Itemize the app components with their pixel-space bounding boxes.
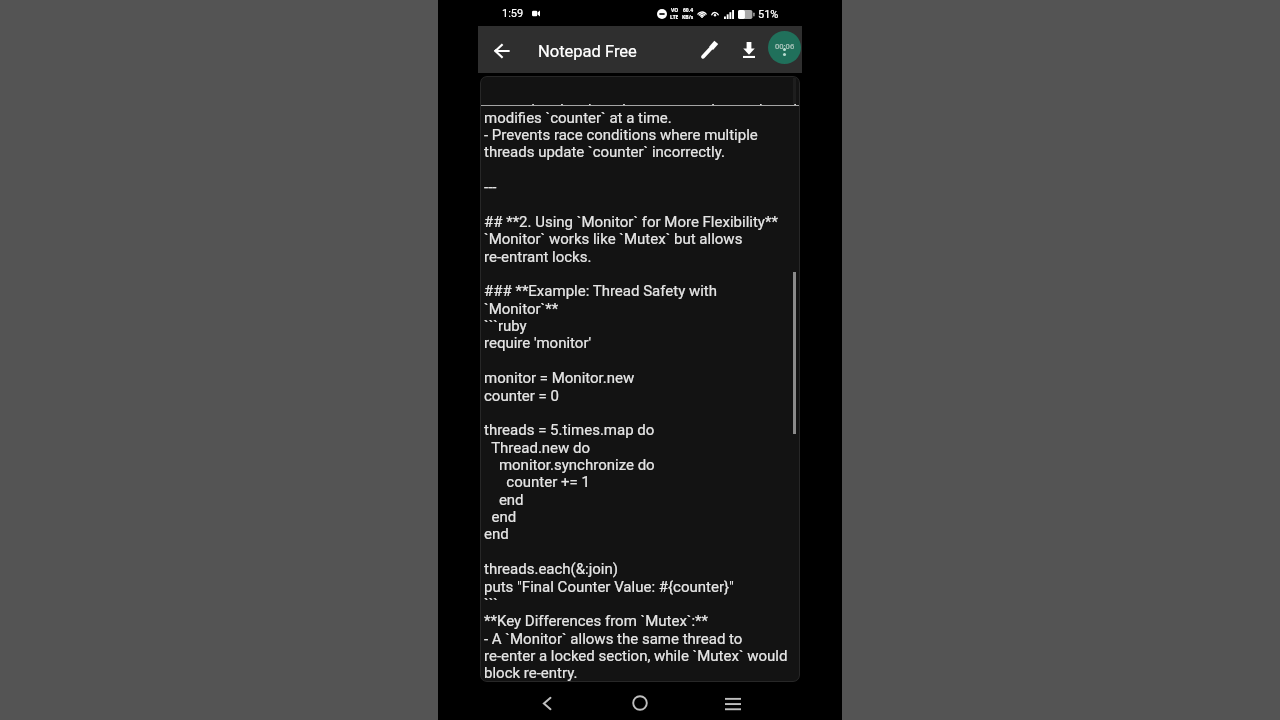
staticText: VO: [671, 7, 679, 14]
button[interactable]: Save: [730, 26, 767, 73]
staticText: monitor = Monitor.new: [484, 369, 635, 387]
button[interactable]: Back: [483, 27, 520, 74]
button[interactable]: Edit: [690, 27, 727, 74]
staticText: threads.each(&:join): [484, 560, 619, 578]
button[interactable]: Home: [618, 684, 662, 720]
staticText: accessing the shared resource, only one …: [484, 101, 797, 105]
staticText: re-entrant locks.: [484, 248, 592, 266]
staticText: threads update `counter` incorrectly.: [484, 143, 725, 161]
staticText: 60.4: [683, 7, 693, 14]
staticText: monitor.synchronize do: [484, 456, 655, 474]
staticText: Thread.new do: [484, 439, 591, 457]
staticText: - Prevents race conditions where multipl…: [484, 126, 758, 144]
staticText: Notepad Free: [538, 42, 637, 61]
staticText: `Monitor` works like `Mutex` but allows: [484, 230, 743, 248]
staticText: - A `Monitor` allows the same thread to: [484, 630, 743, 648]
staticText: `Monitor`**: [484, 300, 559, 318]
staticText: require 'monitor': [484, 334, 592, 352]
staticText: re-enter a locked section, while `Mutex`…: [484, 647, 788, 665]
button[interactable]: Back: [525, 684, 569, 720]
staticText: 51%: [758, 8, 779, 21]
staticText: counter = 0: [484, 387, 560, 405]
staticText: ## **2. Using `Monitor` for More Flexibi…: [484, 213, 778, 231]
staticText: modifies `counter` at a time.: [484, 109, 672, 127]
button[interactable]: Recent apps: [711, 684, 755, 720]
button[interactable]: Screen recorder: [768, 31, 801, 64]
staticText: counter += 1: [484, 473, 590, 491]
staticText: LTE: [670, 14, 679, 21]
staticText: KB/s: [682, 14, 694, 21]
staticText: end: [484, 508, 517, 526]
staticText: end: [484, 525, 509, 543]
staticText: **Key Differences from `Mutex`:**: [484, 612, 709, 630]
staticText: ---: [484, 178, 497, 196]
staticText: ### **Example: Thread Safety with: [484, 282, 718, 300]
staticText: 1:59: [502, 7, 524, 20]
staticText: 00:06: [775, 41, 795, 51]
staticText: ```ruby: [484, 317, 527, 335]
staticText: block re-entry.: [484, 664, 578, 682]
staticText: ```: [484, 595, 498, 613]
staticText: puts "Final Counter Value: #{counter}": [484, 578, 734, 596]
staticText: end: [484, 491, 524, 509]
staticText: threads = 5.times.map do: [484, 421, 655, 439]
